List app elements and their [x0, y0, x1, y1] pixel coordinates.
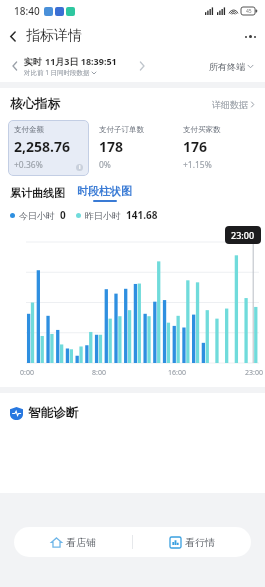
button[interactable]: Market	[133, 527, 251, 557]
button[interactable]: Back	[0, 23, 26, 49]
staticText: 0:00	[20, 368, 34, 378]
button[interactable]: Previous period	[6, 57, 24, 75]
staticText: 指标详情	[26, 27, 82, 45]
staticText: 智能诊断	[28, 405, 78, 421]
button[interactable]: 累计曲线图	[10, 186, 65, 200]
staticText: 23:00	[245, 368, 263, 378]
staticText: +0.36%	[14, 159, 43, 171]
button[interactable]: 支付子订单数	[93, 120, 173, 176]
staticText: 看行情	[185, 536, 215, 549]
staticText: 详细数据	[212, 99, 248, 110]
button[interactable]: 实时	[24, 55, 117, 77]
button[interactable]: 支付买家数	[177, 120, 257, 176]
button[interactable]: 所有终端	[209, 61, 259, 72]
staticText: 18:40	[14, 4, 40, 18]
staticText: 16:00	[168, 368, 186, 378]
staticText: 支付金额	[14, 125, 44, 134]
staticText: 0%	[99, 159, 111, 171]
staticText: 时段柱状图	[77, 184, 132, 198]
staticText: 实时	[24, 55, 45, 67]
staticText: 支付子订单数	[99, 125, 144, 134]
staticText: 核心指标	[10, 96, 60, 112]
staticText: 所有终端	[209, 61, 245, 72]
button[interactable]: 详细数据	[212, 99, 255, 110]
staticText: 8:00	[92, 368, 106, 378]
staticText: 支付买家数	[183, 125, 221, 134]
staticText: 45	[246, 8, 252, 15]
button[interactable]: 智能诊断	[10, 405, 255, 421]
staticText: 累计曲线图	[10, 186, 65, 200]
staticText: 176	[183, 137, 208, 156]
button[interactable]: 支付金额	[8, 120, 89, 176]
staticText: 11月3日 18:39:51	[45, 55, 117, 67]
staticText: +1.15%	[183, 159, 212, 171]
other: Shop	[51, 537, 62, 548]
staticText: i	[79, 164, 81, 171]
staticText: 141.68	[126, 208, 158, 222]
staticText: 今日小时	[19, 210, 55, 221]
staticText: 对比前 1 日同时段数据	[24, 68, 90, 77]
button[interactable]: Next period	[133, 57, 151, 75]
other: Market	[170, 537, 181, 548]
button[interactable]: More options	[235, 22, 265, 50]
staticText: 昨日小时	[85, 210, 121, 221]
staticText: 23:00	[231, 229, 255, 241]
button[interactable]: 时段柱状图	[77, 184, 132, 202]
staticText: 看店铺	[66, 536, 96, 549]
staticText: 178	[99, 137, 124, 156]
staticText: 2,258.76	[14, 137, 70, 156]
button[interactable]: Shop	[14, 527, 132, 557]
staticText: 0	[60, 208, 66, 222]
